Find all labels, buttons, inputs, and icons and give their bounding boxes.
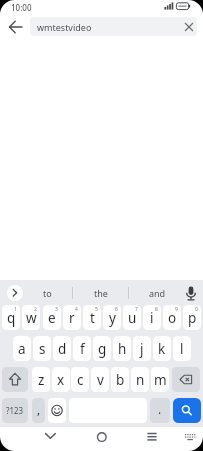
- button[interactable]: z: [32, 367, 50, 392]
- button[interactable]: .: [150, 398, 170, 423]
- staticText: 2: [34, 306, 37, 313]
- staticText: z: [38, 371, 45, 389]
- staticText: 6: [115, 306, 118, 313]
- button[interactable]: a: [13, 336, 31, 361]
- staticText: 8: [155, 306, 158, 313]
- staticText: 7: [135, 306, 138, 313]
- button[interactable]: i: [143, 305, 161, 330]
- staticText: q: [7, 309, 16, 327]
- staticText: n: [136, 371, 145, 389]
- button[interactable]: u: [123, 305, 141, 330]
- button[interactable]: t: [83, 305, 101, 330]
- button[interactable]: [183, 284, 199, 303]
- staticText: d: [58, 340, 67, 358]
- button[interactable]: f: [73, 336, 91, 361]
- staticText: .: [158, 401, 162, 417]
- staticText: o: [168, 309, 177, 327]
- staticText: 1: [14, 306, 17, 313]
- staticText: 9: [175, 306, 178, 313]
- staticText: p: [188, 309, 197, 327]
- button[interactable]: b: [111, 367, 129, 392]
- button[interactable]: [183, 431, 197, 443]
- button[interactable]: j: [133, 336, 151, 361]
- staticText: u: [128, 309, 137, 327]
- button[interactable]: k: [153, 336, 171, 361]
- staticText: 5: [95, 306, 98, 313]
- button[interactable]: [48, 398, 66, 423]
- button[interactable]: y: [103, 305, 121, 330]
- button[interactable]: [6, 18, 26, 36]
- staticText: 0: [195, 306, 198, 313]
- button[interactable]: o: [163, 305, 181, 330]
- button[interactable]: r: [63, 305, 81, 330]
- button[interactable]: d: [53, 336, 71, 361]
- staticText: i: [150, 309, 154, 327]
- button[interactable]: p: [183, 305, 201, 330]
- button[interactable]: g: [93, 336, 111, 361]
- staticText: ?123: [6, 405, 24, 416]
- staticText: 3: [55, 306, 58, 313]
- staticText: w: [26, 309, 37, 327]
- staticText: to: [43, 287, 52, 299]
- staticText: ,: [37, 401, 41, 417]
- button[interactable]: and: [129, 280, 186, 305]
- button[interactable]: n: [131, 367, 149, 392]
- button[interactable]: [173, 398, 201, 423]
- button[interactable]: [7, 285, 23, 301]
- staticText: s: [39, 340, 46, 358]
- button[interactable]: to: [22, 280, 72, 305]
- staticText: f: [80, 340, 85, 358]
- staticText: m: [154, 371, 167, 389]
- button[interactable]: ,: [32, 398, 45, 423]
- button[interactable]: ?123: [2, 398, 28, 423]
- staticText: 10:00: [11, 2, 32, 13]
- button[interactable]: [182, 20, 196, 34]
- staticText: x: [57, 371, 65, 389]
- staticText: h: [118, 340, 127, 358]
- button[interactable]: x: [52, 367, 70, 392]
- button[interactable]: q: [2, 305, 20, 330]
- button[interactable]: s: [33, 336, 51, 361]
- staticText: and: [149, 287, 166, 299]
- button[interactable]: [2, 367, 28, 392]
- button[interactable]: h: [113, 336, 131, 361]
- button[interactable]: l: [173, 336, 191, 361]
- button[interactable]: w: [22, 305, 40, 330]
- staticText: t: [90, 309, 95, 327]
- button[interactable]: the: [73, 280, 129, 305]
- staticText: 4: [75, 306, 78, 313]
- staticText: wmtestvideo: [37, 21, 92, 33]
- button[interactable]: [172, 367, 200, 392]
- button[interactable]: c: [71, 367, 89, 392]
- staticText: l: [180, 340, 184, 358]
- button[interactable]: wmtestvideo: [30, 17, 197, 36]
- staticText: c: [77, 371, 84, 389]
- staticText: a: [18, 340, 26, 358]
- button[interactable]: v: [91, 367, 109, 392]
- staticText: the: [94, 287, 108, 299]
- staticText: e: [48, 309, 56, 327]
- button[interactable]: e: [43, 305, 61, 330]
- staticText: v: [97, 371, 104, 389]
- button[interactable]: [42, 428, 59, 444]
- staticText: b: [116, 371, 125, 389]
- staticText: y: [109, 309, 116, 327]
- button[interactable]: [94, 429, 110, 445]
- button[interactable]: m: [151, 367, 169, 392]
- button[interactable]: [144, 428, 160, 445]
- staticText: g: [98, 340, 107, 358]
- staticText: k: [158, 340, 166, 358]
- staticText: j: [140, 340, 144, 358]
- staticText: r: [69, 309, 75, 327]
